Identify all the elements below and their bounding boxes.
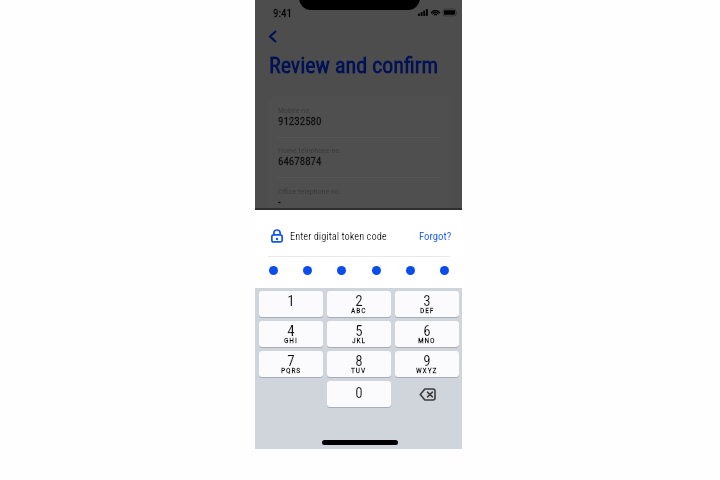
- staticText: 9: [423, 352, 431, 370]
- staticText: DEF: [420, 306, 435, 315]
- staticText: Forgot?: [419, 230, 452, 243]
- button[interactable]: 7: [259, 351, 323, 377]
- staticText: WXYZ: [416, 366, 438, 375]
- staticText: PQRS: [281, 366, 302, 375]
- staticText: JKL: [352, 336, 366, 345]
- staticText: 7: [287, 352, 295, 370]
- button[interactable]: Forgot?: [419, 230, 452, 243]
- button[interactable]: Back: [262, 25, 284, 47]
- staticText: 2: [355, 292, 363, 310]
- button[interactable]: 3: [395, 291, 459, 317]
- staticText: TUV: [351, 366, 367, 375]
- staticText: Enter digital token code: [290, 230, 387, 242]
- button[interactable]: 1: [259, 291, 323, 317]
- button[interactable]: Backspace: [395, 381, 459, 407]
- staticText: Office telephone no.: [278, 187, 342, 196]
- button[interactable]: 2: [327, 291, 391, 317]
- staticText: 3: [423, 292, 431, 310]
- button[interactable]: 5: [327, 321, 391, 347]
- staticText: 1: [287, 292, 295, 310]
- button[interactable]: 9: [395, 351, 459, 377]
- button[interactable]: 8: [327, 351, 391, 377]
- staticText: 5: [355, 322, 363, 340]
- staticText: GHI: [284, 336, 298, 345]
- staticText: 8: [355, 352, 363, 370]
- staticText: 6: [423, 322, 431, 340]
- staticText: MNO: [418, 336, 436, 345]
- staticText: 0: [355, 384, 363, 402]
- button[interactable]: 6: [395, 321, 459, 347]
- button[interactable]: 4: [259, 321, 323, 347]
- staticText: ABC: [351, 306, 367, 315]
- button[interactable]: 0: [327, 381, 391, 407]
- staticText: Mobile no.: [278, 106, 312, 115]
- staticText: 9:41: [273, 7, 292, 20]
- staticText: -: [278, 196, 281, 209]
- staticText: 4: [287, 322, 295, 340]
- staticText: Home telephone no.: [278, 146, 342, 155]
- staticText: 91232580: [278, 115, 322, 128]
- staticText: Review and confirm: [269, 53, 439, 79]
- staticText: 64678874: [278, 155, 322, 168]
